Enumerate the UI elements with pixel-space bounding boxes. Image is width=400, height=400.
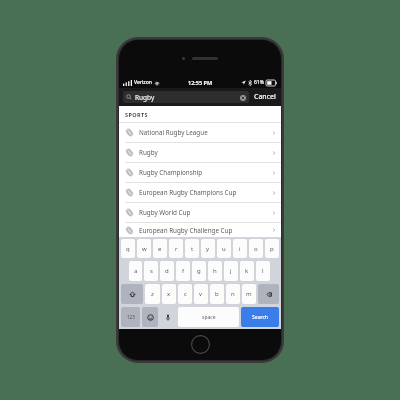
button[interactable]: Shift: [121, 284, 143, 304]
button[interactable]: o: [249, 239, 263, 258]
button[interactable]: Emoji: [142, 307, 158, 327]
button[interactable]: n: [226, 284, 240, 304]
staticText: s: [150, 267, 153, 275]
staticText: Search: [252, 314, 268, 321]
staticText: a: [134, 267, 138, 275]
staticText: y: [206, 245, 210, 253]
staticText: 12:55 PM: [188, 79, 213, 86]
button[interactable]: a: [129, 261, 142, 281]
button[interactable]: m: [242, 284, 256, 304]
button[interactable]: Search: [241, 307, 279, 327]
staticText: Cancel: [254, 92, 276, 102]
button[interactable]: p: [265, 239, 279, 258]
staticText: European Rugby Challenge Cup: [139, 226, 233, 235]
button[interactable]: Rugby Championship: [119, 163, 281, 182]
staticText: q: [126, 245, 130, 253]
button[interactable]: Home: [191, 335, 210, 354]
staticText: x: [167, 290, 171, 298]
staticText: l: [262, 267, 264, 275]
button[interactable]: Rugby World Cup: [119, 203, 281, 222]
button[interactable]: space: [178, 307, 239, 327]
staticText: g: [197, 267, 201, 275]
button[interactable]: Backspace: [258, 284, 279, 304]
button[interactable]: i: [233, 239, 247, 258]
button[interactable]: z: [145, 284, 160, 304]
button[interactable]: u: [217, 239, 231, 258]
button[interactable]: l: [256, 261, 270, 281]
button[interactable]: f: [176, 261, 190, 281]
button[interactable]: National Rugby League: [119, 123, 281, 142]
button[interactable]: j: [224, 261, 238, 281]
staticText: w: [142, 245, 147, 253]
staticText: 123: [127, 314, 135, 320]
button[interactable]: k: [240, 261, 254, 281]
button[interactable]: g: [192, 261, 206, 281]
button[interactable]: c: [178, 284, 192, 304]
button[interactable]: t: [185, 239, 199, 258]
button[interactable]: h: [208, 261, 222, 281]
button[interactable]: d: [160, 261, 174, 281]
button[interactable]: Clear text: [239, 94, 246, 101]
staticText: National Rugby League: [139, 128, 208, 137]
button[interactable]: v: [194, 284, 208, 304]
staticText: Rugby Championship: [139, 168, 203, 177]
staticText: d: [165, 267, 169, 275]
button[interactable]: Rugby: [119, 143, 281, 162]
staticText: Verizon: [134, 79, 152, 86]
button[interactable]: Rugby: [123, 91, 249, 103]
button[interactable]: Cancel: [253, 90, 277, 104]
staticText: SPORTS: [125, 111, 149, 118]
staticText: o: [254, 245, 258, 253]
button[interactable]: European Rugby Champions Cup: [119, 183, 281, 202]
button[interactable]: q: [121, 239, 135, 258]
staticText: n: [231, 290, 235, 298]
button[interactable]: r: [169, 239, 183, 258]
staticText: r: [175, 245, 178, 253]
button[interactable]: e: [153, 239, 167, 258]
button[interactable]: b: [210, 284, 224, 304]
button[interactable]: w: [137, 239, 151, 258]
staticText: c: [184, 290, 187, 298]
staticText: k: [245, 267, 249, 275]
staticText: v: [199, 290, 203, 298]
staticText: i: [239, 245, 241, 253]
button[interactable]: x: [162, 284, 176, 304]
button[interactable]: Dictation: [160, 307, 176, 327]
staticText: b: [215, 290, 219, 298]
staticText: j: [230, 267, 232, 275]
button[interactable]: y: [201, 239, 215, 258]
staticText: m: [246, 290, 252, 298]
button[interactable]: European Rugby Challenge Cup: [119, 223, 281, 237]
staticText: e: [158, 245, 162, 253]
staticText: Rugby: [139, 148, 158, 157]
staticText: f: [182, 267, 185, 275]
staticText: Rugby World Cup: [139, 208, 191, 217]
staticText: z: [151, 290, 154, 298]
staticText: u: [222, 245, 226, 253]
staticText: Rugby: [135, 93, 155, 102]
staticText: European Rugby Champions Cup: [139, 188, 237, 197]
staticText: 61%: [254, 79, 264, 86]
staticText: p: [270, 245, 274, 253]
staticText: h: [213, 267, 217, 275]
button[interactable]: s: [144, 261, 158, 281]
staticText: t: [191, 245, 194, 253]
button[interactable]: 123: [121, 307, 140, 327]
staticText: space: [202, 314, 216, 321]
